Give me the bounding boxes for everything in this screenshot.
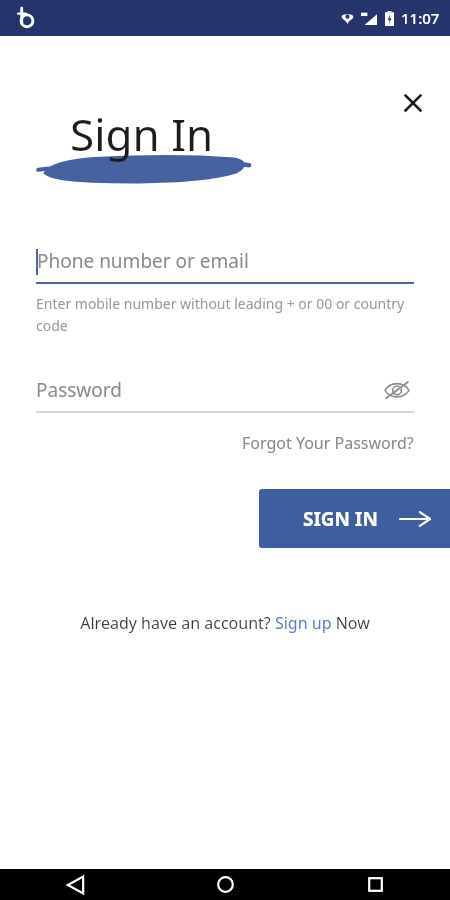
staticText: Password [36, 377, 122, 403]
staticText: Forgot Your Password? [242, 432, 414, 454]
button[interactable]: Home [150, 869, 300, 900]
button[interactable]: Already have an account? Sign up Now [74, 606, 376, 640]
staticText: Sign In [70, 104, 214, 164]
button[interactable]: Phone number or email [36, 240, 414, 335]
staticText: SIGN IN [303, 506, 378, 532]
button[interactable]: Password [36, 369, 414, 413]
button[interactable]: Forgot Your Password? [238, 428, 418, 458]
staticText: Already have an account? Sign up Now [80, 612, 370, 634]
staticText: 11:07 [401, 8, 440, 28]
staticText: Enter mobile number without leading + or… [36, 294, 414, 335]
staticText: Phone number or email [37, 248, 249, 274]
button[interactable]: SIGN IN [259, 489, 450, 548]
button[interactable]: Show password [380, 373, 414, 407]
button[interactable]: Back [0, 869, 150, 900]
button[interactable]: Close [392, 82, 434, 124]
button[interactable]: Recent apps [300, 869, 450, 900]
